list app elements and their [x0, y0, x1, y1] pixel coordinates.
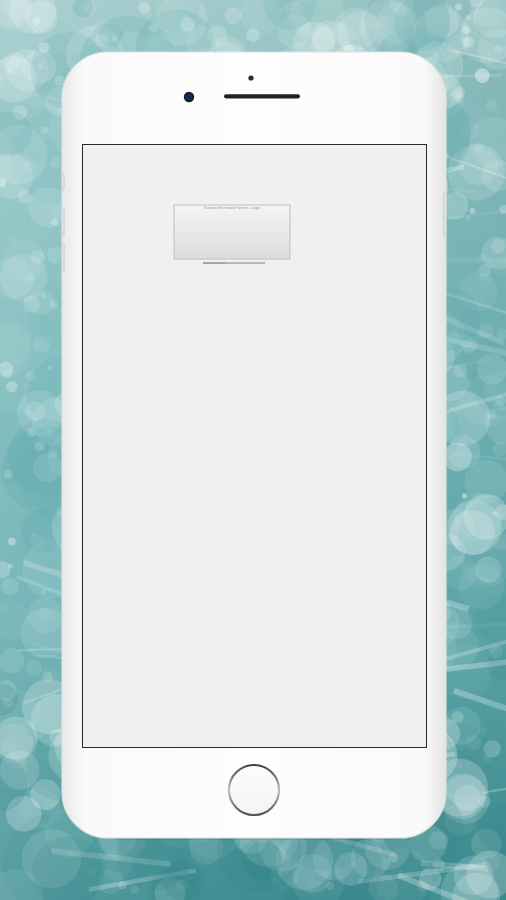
button[interactable]: Home: [228, 764, 280, 816]
staticText: Student Information System - Login: [174, 205, 290, 259]
